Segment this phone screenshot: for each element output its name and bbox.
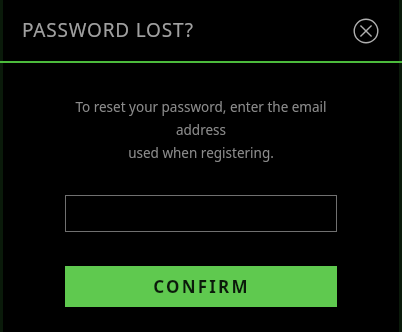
staticText: To reset your password, enter the email … [56, 98, 346, 162]
button[interactable]: CONFIRM [65, 266, 337, 307]
staticText: PASSWORD LOST? [22, 17, 194, 43]
button[interactable]: Email address field [65, 195, 337, 232]
button[interactable]: Close [351, 16, 381, 46]
staticText: CONFIRM [153, 275, 250, 298]
